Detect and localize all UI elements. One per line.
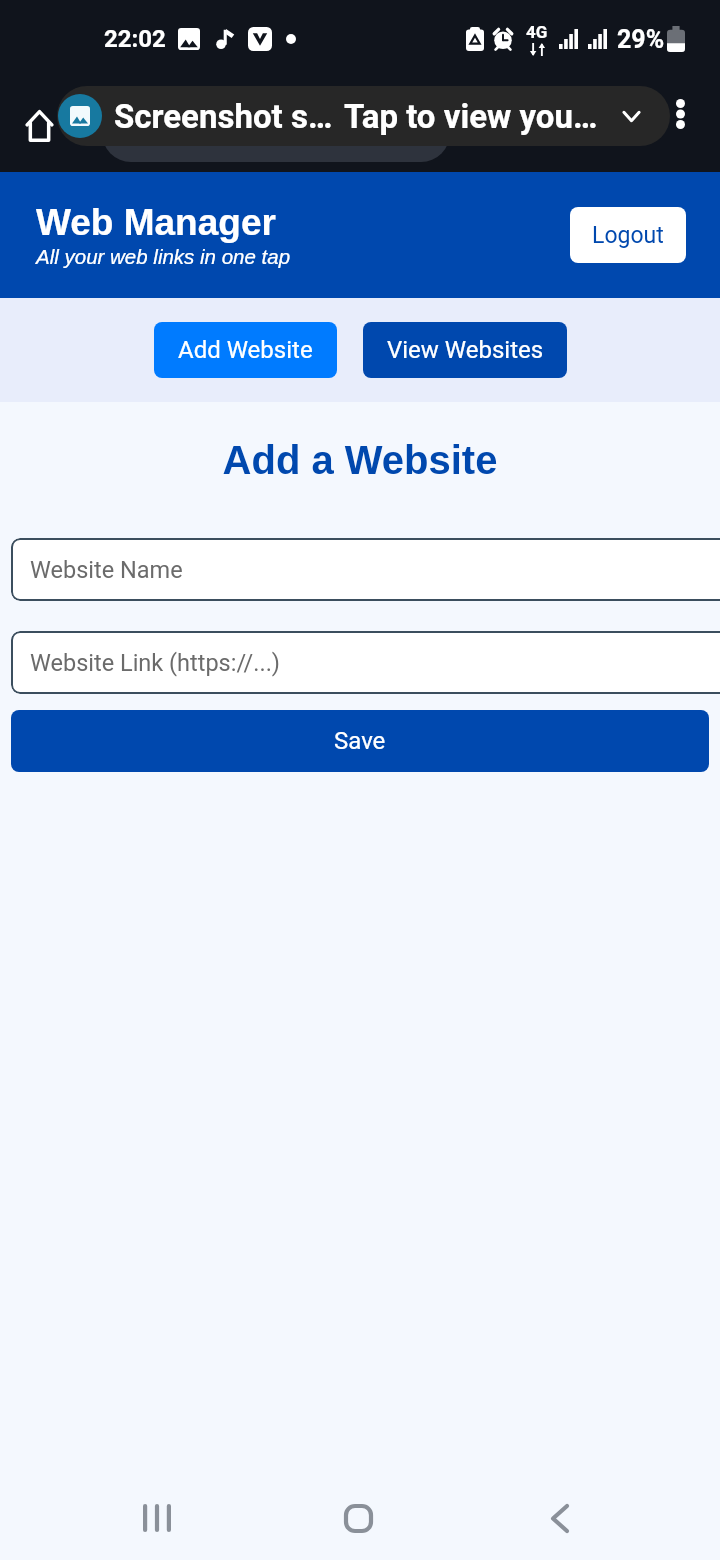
button[interactable]: View Websites [363,322,567,378]
staticText: Website Link (https://...) [30,649,281,677]
button[interactable]: Home [323,1483,393,1553]
button[interactable]: Save [11,710,709,772]
staticText: Screenshot s… [114,97,333,136]
staticText: All your web links in one tap [36,245,291,268]
staticText: 29% [617,25,665,54]
staticText: Web Manager [36,202,276,243]
staticText: Tap to view you… [344,97,598,136]
staticText: Logout [592,222,664,249]
button[interactable]: Website Name [11,538,720,601]
button[interactable]: Screenshot s… [57,86,670,146]
staticText: Add a Website [0,438,720,483]
staticText: 22:02 [104,25,166,53]
button[interactable]: Website Link (https://...) [11,631,720,694]
staticText: 4G [526,22,548,42]
button[interactable]: Recent apps [122,1483,192,1553]
button[interactable]: Expand notification [611,96,651,136]
staticText: Save [334,727,386,755]
staticText: View Websites [387,336,544,364]
button[interactable]: Home [18,104,60,146]
button[interactable]: Logout [570,207,686,263]
button[interactable]: Add Website [154,322,337,378]
staticText: Website Name [30,556,183,584]
staticText: Add Website [178,336,313,364]
button[interactable]: More options [656,90,704,138]
button[interactable]: Back [525,1483,595,1553]
